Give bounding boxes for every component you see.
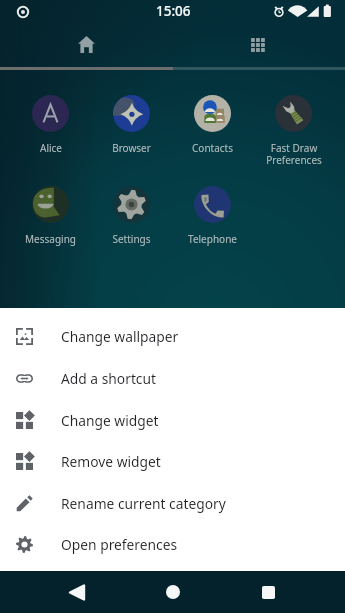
staticText: Alice bbox=[40, 141, 62, 155]
staticText: Contacts bbox=[192, 141, 233, 155]
button[interactable]: Remove widget bbox=[0, 441, 345, 482]
button[interactable]: Change widget bbox=[0, 399, 345, 441]
button[interactable]: All applications bbox=[172, 24, 345, 70]
button[interactable]: Home category bbox=[0, 24, 172, 70]
button[interactable]: Messaging bbox=[10, 172, 91, 263]
staticText: Change widget bbox=[61, 411, 159, 430]
staticText: Browser bbox=[112, 141, 151, 155]
staticText: Settings bbox=[112, 232, 151, 246]
staticText: Change wallpaper bbox=[61, 327, 179, 346]
button[interactable]: Home bbox=[149, 571, 197, 613]
button[interactable]: Rename current category bbox=[0, 482, 345, 524]
button[interactable]: Change wallpaper bbox=[0, 315, 345, 357]
staticText: Add a shortcut bbox=[61, 369, 156, 388]
staticText: Fast Draw Preferences bbox=[266, 141, 322, 167]
button[interactable]: Open preferences bbox=[0, 524, 345, 564]
button[interactable]: Browser bbox=[91, 81, 172, 172]
button[interactable]: Alice bbox=[10, 81, 91, 172]
staticText: Remove widget bbox=[61, 452, 161, 471]
button[interactable]: Settings bbox=[91, 172, 172, 263]
staticText: Rename current category bbox=[61, 494, 226, 513]
button[interactable]: Contacts bbox=[172, 81, 253, 172]
button[interactable]: Telephone bbox=[172, 172, 253, 263]
button[interactable]: Fast Draw Preferences bbox=[253, 81, 334, 172]
staticText: Open preferences bbox=[61, 535, 178, 554]
staticText: Messaging bbox=[25, 232, 76, 246]
button[interactable]: Back bbox=[52, 571, 101, 613]
staticText: 15:06 bbox=[156, 2, 191, 20]
staticText: Telephone bbox=[188, 232, 237, 246]
button[interactable]: Add a shortcut bbox=[0, 357, 345, 399]
button[interactable]: Recent apps bbox=[244, 571, 292, 613]
